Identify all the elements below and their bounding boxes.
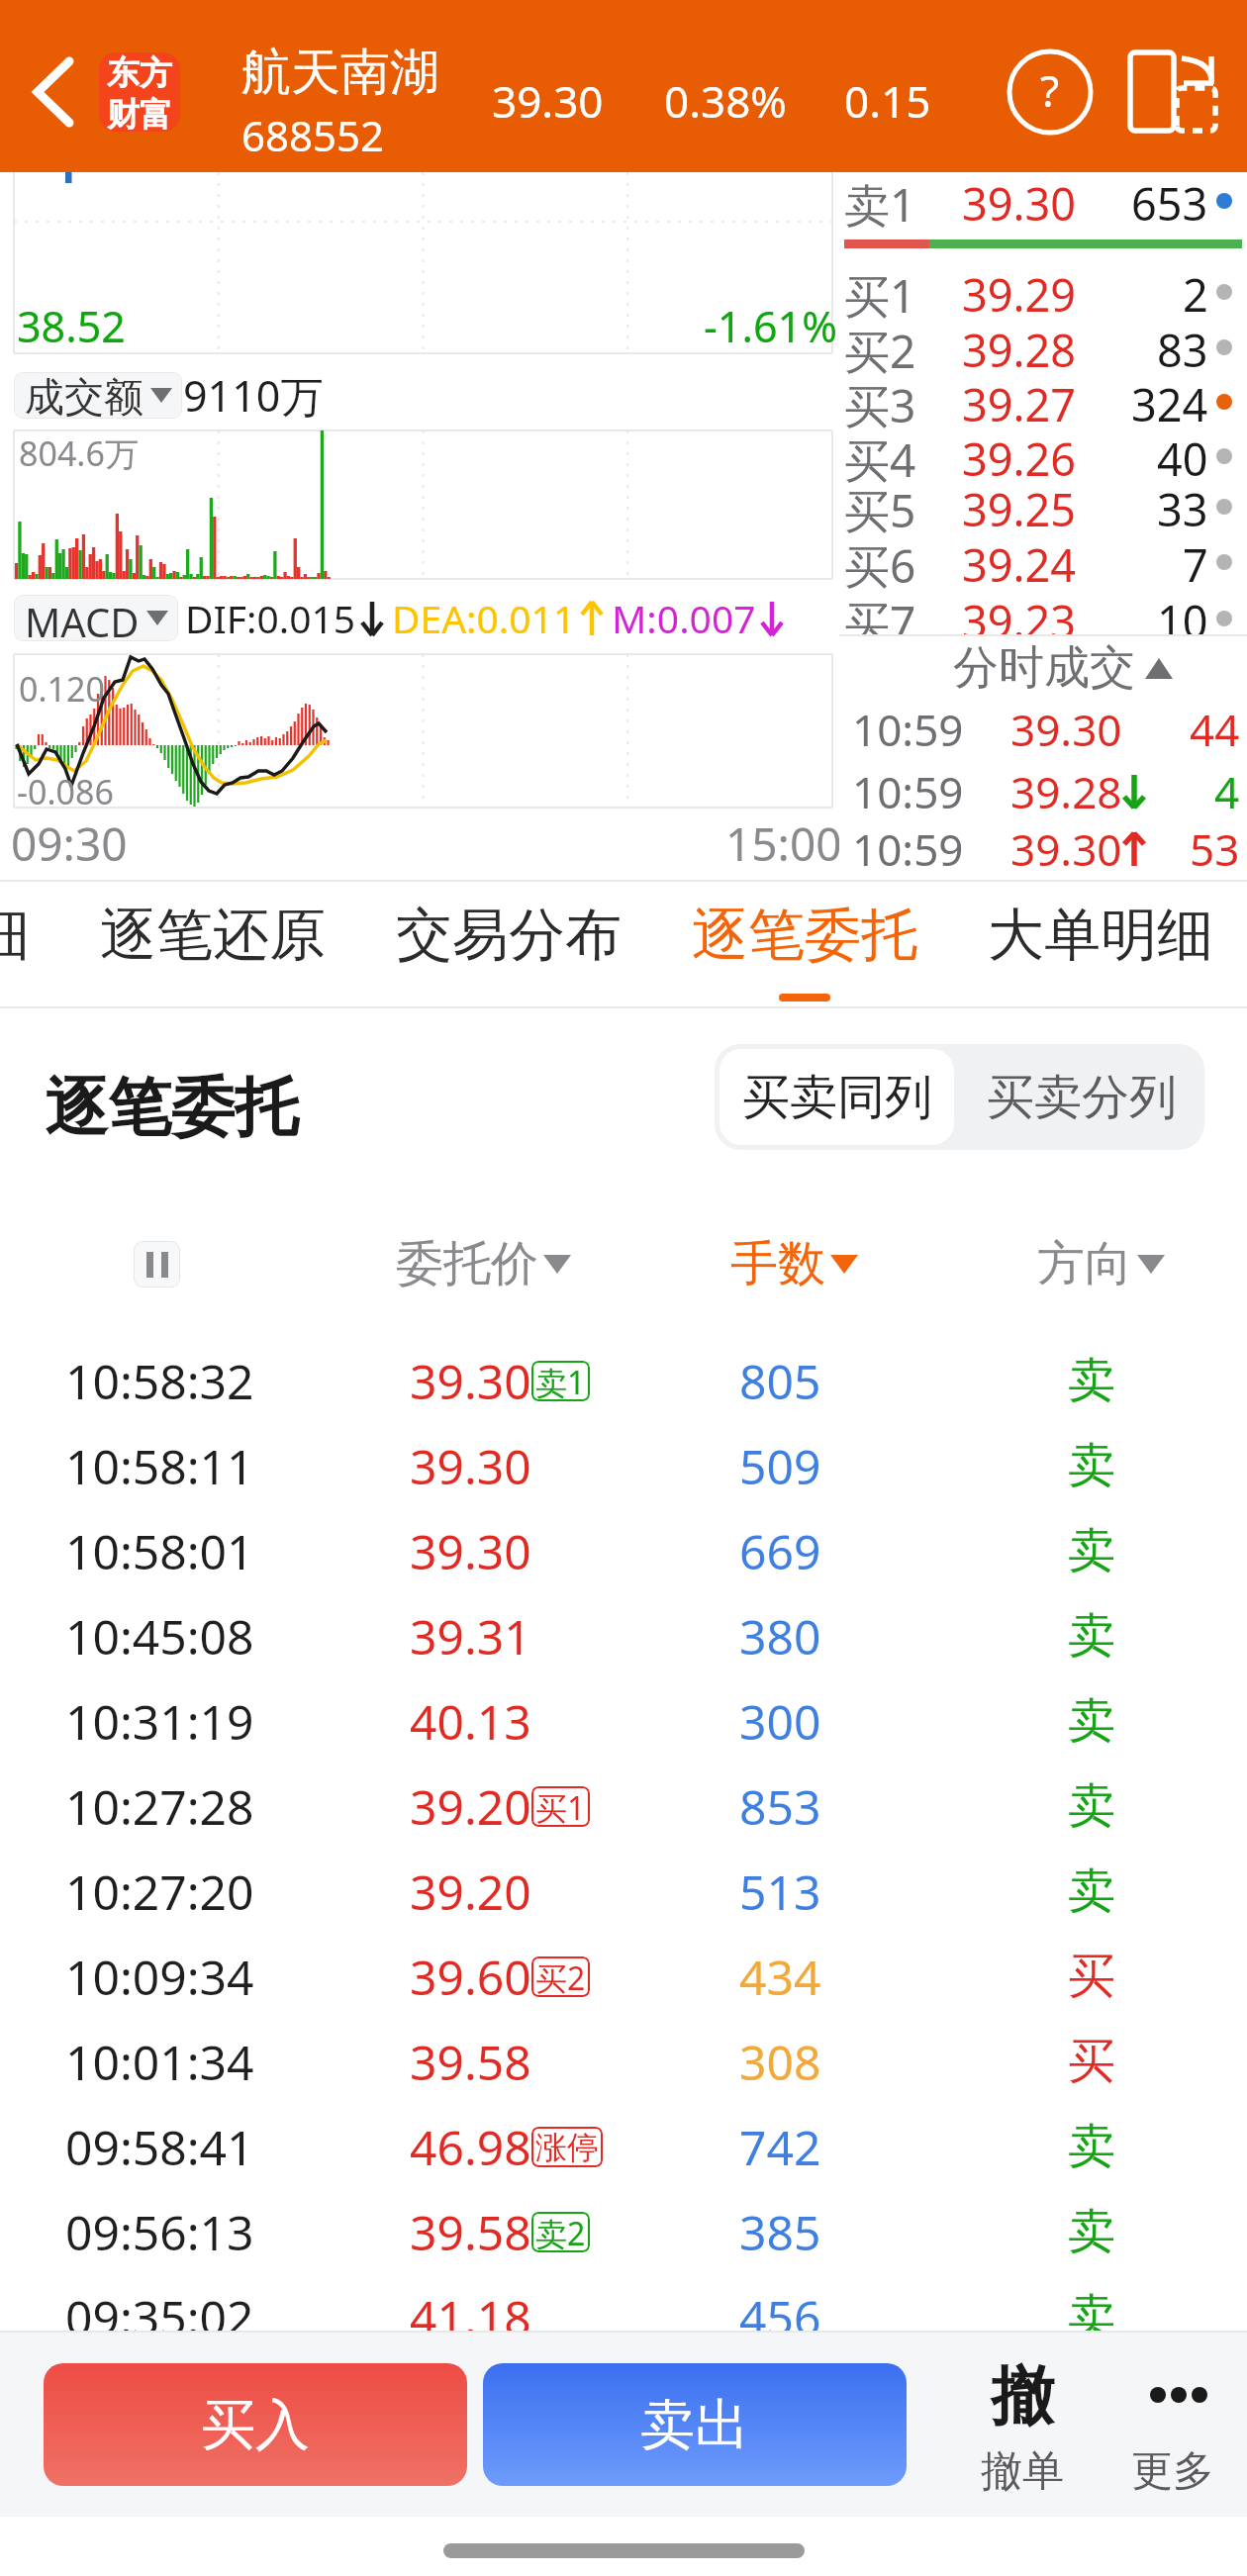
staticText: 0.120 bbox=[19, 666, 105, 712]
staticText: 手数 bbox=[730, 1234, 825, 1293]
staticText: 742 bbox=[739, 2115, 821, 2179]
staticText: 39.30 bbox=[410, 1434, 531, 1498]
staticText: 385 bbox=[739, 2200, 821, 2264]
button[interactable]: Help bbox=[1007, 48, 1094, 136]
staticText: 卖1 bbox=[535, 1361, 586, 1401]
button[interactable]: 买6 bbox=[839, 534, 1247, 590]
staticText: 撤单 bbox=[981, 2445, 1064, 2498]
staticText: 卖 bbox=[1068, 1861, 1115, 1921]
button[interactable]: 卖出 bbox=[483, 2363, 907, 2486]
button[interactable]: 买2 bbox=[839, 320, 1247, 375]
button[interactable]: 10:59 bbox=[839, 762, 1247, 821]
button[interactable]: East Money bbox=[99, 52, 180, 132]
staticText: 39.20 bbox=[410, 1774, 531, 1839]
staticText: 大单明细 bbox=[0, 900, 30, 971]
button[interactable]: 10:58:32 bbox=[0, 1338, 1247, 1423]
staticText: 308 bbox=[739, 2030, 821, 2094]
button[interactable]: 10:27:28 bbox=[0, 1764, 1247, 1849]
staticText: 卖 bbox=[1068, 1606, 1115, 1666]
button[interactable]: 手数 bbox=[645, 1219, 942, 1308]
staticText: 688552 bbox=[241, 107, 385, 163]
staticText: 卖 bbox=[1068, 1436, 1115, 1495]
button[interactable]: 大单明细 bbox=[0, 880, 65, 1008]
staticText: 33 bbox=[1157, 479, 1208, 534]
button[interactable]: More bbox=[1102, 2333, 1244, 2517]
button[interactable]: 买7 bbox=[839, 591, 1247, 646]
button[interactable]: 10:45:08 bbox=[0, 1593, 1247, 1678]
button[interactable]: 成交额 bbox=[14, 372, 182, 419]
button[interactable]: 09:35:02 bbox=[0, 2274, 1247, 2359]
staticText: 38.52 bbox=[17, 297, 126, 355]
button[interactable]: Pause updates bbox=[134, 1241, 180, 1288]
button[interactable]: 09:58:41 bbox=[0, 2104, 1247, 2189]
staticText: 撤 bbox=[991, 2356, 1054, 2436]
staticText: 09:56:13 bbox=[65, 2200, 254, 2264]
staticText: 39.30 bbox=[1010, 700, 1122, 759]
staticText: 10:01:34 bbox=[65, 2030, 254, 2094]
staticText: 方向 bbox=[1037, 1234, 1132, 1293]
staticText: 324 bbox=[1131, 374, 1208, 429]
button[interactable]: 买1 bbox=[839, 264, 1247, 320]
staticText: 买卖分列 bbox=[987, 1068, 1177, 1127]
button[interactable]: 撤 bbox=[923, 2333, 1121, 2517]
button[interactable]: 买4 bbox=[839, 429, 1247, 484]
staticText: 买卖同列 bbox=[742, 1068, 932, 1127]
button[interactable]: 10:58:01 bbox=[0, 1508, 1247, 1593]
staticText: 44 bbox=[1190, 700, 1240, 759]
button[interactable]: 10:58:11 bbox=[0, 1423, 1247, 1508]
button[interactable]: 10:27:20 bbox=[0, 1849, 1247, 1934]
button[interactable]: 10:09:34 bbox=[0, 1934, 1247, 2019]
staticText: 39.31 bbox=[410, 1604, 531, 1669]
staticText: 39.29 bbox=[962, 264, 1077, 320]
staticText: 39.24 bbox=[962, 534, 1077, 590]
staticText: 39.30 bbox=[410, 1349, 531, 1413]
staticText: 805 bbox=[739, 1349, 821, 1413]
button[interactable]: 分时成交 bbox=[859, 633, 1247, 703]
button[interactable]: 卖1 bbox=[839, 173, 1247, 229]
staticText: 买5 bbox=[844, 479, 916, 534]
staticText: DEA:0.011 bbox=[392, 592, 576, 644]
button[interactable]: 10:01:34 bbox=[0, 2019, 1247, 2104]
staticText: 39.60 bbox=[410, 1945, 531, 2009]
staticText: 买 bbox=[1068, 2032, 1115, 2091]
button[interactable]: 10:59 bbox=[839, 819, 1247, 879]
staticText: 2 bbox=[1183, 264, 1208, 320]
button[interactable]: 买卖分列 bbox=[959, 1044, 1204, 1150]
staticText: 10:09:34 bbox=[65, 1945, 254, 2009]
button[interactable]: 大单明细 bbox=[952, 880, 1247, 1008]
button[interactable]: 买入 bbox=[44, 2363, 467, 2486]
staticText: 卖 bbox=[1068, 1521, 1115, 1580]
staticText: 83 bbox=[1157, 320, 1208, 375]
staticText: 卖 bbox=[1068, 1776, 1115, 1836]
button[interactable]: 买3 bbox=[839, 374, 1247, 429]
staticText: DIF:0.015 bbox=[185, 592, 356, 644]
staticText: 40 bbox=[1157, 429, 1208, 484]
staticText: ? bbox=[1040, 60, 1060, 120]
button[interactable]: 10:31:19 bbox=[0, 1678, 1247, 1764]
staticText: 39.30 bbox=[962, 173, 1077, 229]
staticText: 东方 bbox=[107, 52, 172, 94]
staticText: 39.30 bbox=[492, 71, 604, 131]
button[interactable]: 方向 bbox=[952, 1219, 1247, 1308]
button[interactable]: Rotate screen bbox=[1126, 48, 1219, 137]
staticText: 41.18 bbox=[410, 2285, 531, 2349]
staticText: 财富 bbox=[107, 94, 172, 132]
staticText: 10:45:08 bbox=[65, 1604, 254, 1669]
button[interactable]: 10:59 bbox=[839, 700, 1247, 759]
button[interactable]: 逐笔委托 bbox=[656, 880, 953, 1008]
button[interactable]: 买5 bbox=[839, 479, 1247, 534]
staticText: 10:58:01 bbox=[65, 1519, 254, 1583]
staticText: 509 bbox=[739, 1434, 821, 1498]
staticText: 卖 bbox=[1068, 2117, 1115, 2176]
button[interactable]: 委托价 bbox=[335, 1219, 631, 1308]
staticText: 大单明细 bbox=[988, 900, 1213, 971]
staticText: 39.30 bbox=[1010, 819, 1122, 879]
button[interactable]: 交易分布 bbox=[360, 880, 657, 1008]
button[interactable]: 逐笔还原 bbox=[64, 880, 361, 1008]
button[interactable]: 买卖同列 bbox=[719, 1049, 954, 1145]
button[interactable]: Back bbox=[14, 48, 89, 129]
button[interactable]: 09:56:13 bbox=[0, 2189, 1247, 2274]
button[interactable]: MACD bbox=[14, 595, 178, 641]
staticText: 逐笔委托 bbox=[692, 900, 917, 971]
staticText: 513 bbox=[739, 1860, 821, 1924]
